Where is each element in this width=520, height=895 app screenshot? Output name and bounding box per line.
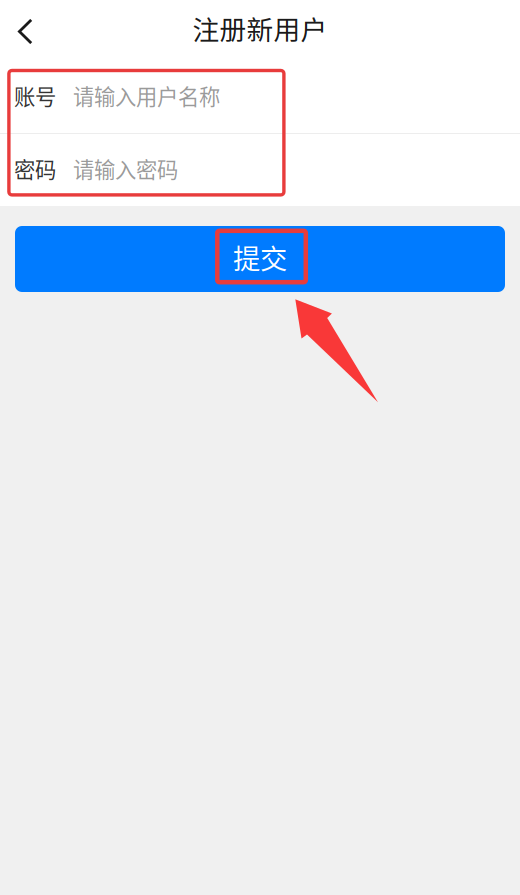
staticText: 请输入用户名称 [73,80,220,111]
button[interactable]: Back [0,0,33,60]
button[interactable]: 提交 [15,226,505,292]
staticText: 请输入密码 [73,153,178,184]
staticText: 注册新用户 [192,9,327,47]
staticText: 账号 [14,80,56,111]
staticText: 提交 [233,237,287,277]
button[interactable]: 密码 [0,134,520,206]
button[interactable]: 账号 [0,61,520,133]
staticText: 密码 [14,153,56,184]
